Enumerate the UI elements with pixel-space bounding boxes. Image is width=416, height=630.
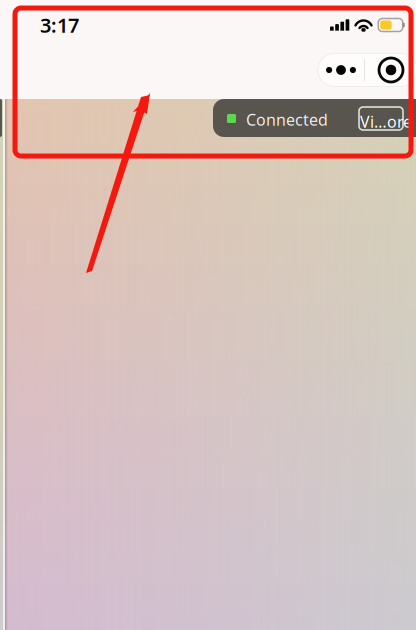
button[interactable] bbox=[359, 107, 403, 130]
staticText: Connected bbox=[246, 109, 328, 130]
button[interactable]: More bbox=[318, 53, 364, 86]
staticText: 3:17 bbox=[40, 12, 79, 38]
button[interactable]: Record bbox=[365, 53, 416, 86]
staticText: Vi…ore bbox=[360, 111, 412, 132]
